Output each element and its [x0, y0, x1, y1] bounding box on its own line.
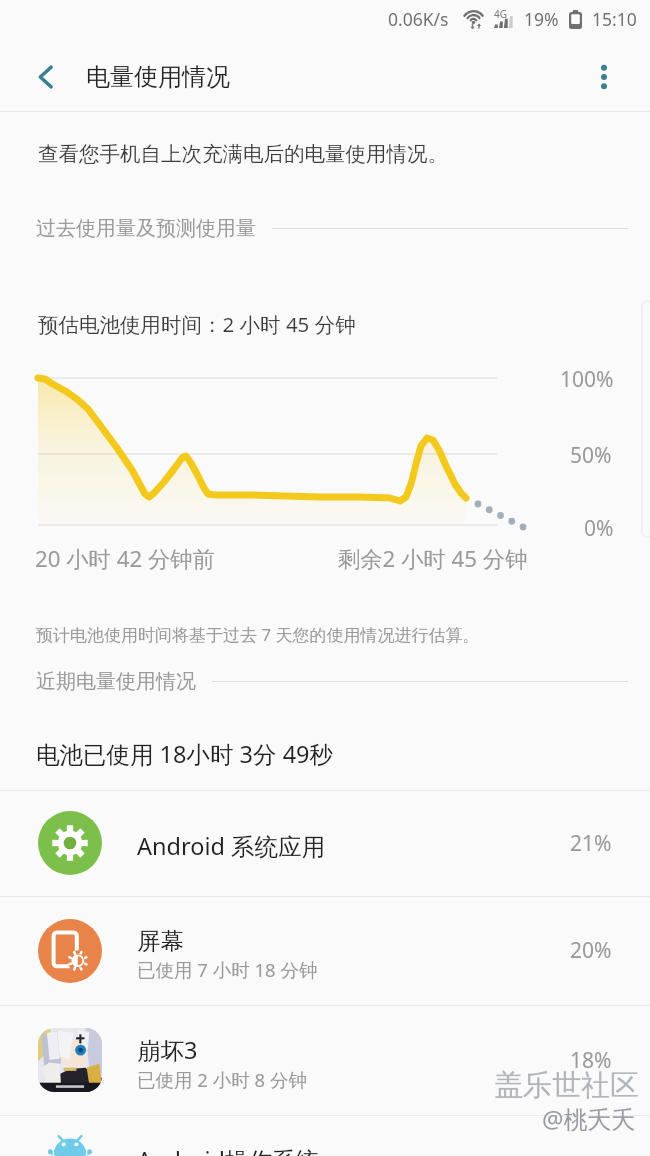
- staticText: 18%: [570, 1046, 612, 1075]
- staticText: 崩坏3: [137, 1034, 198, 1066]
- staticText: 屏幕: [137, 926, 184, 956]
- button[interactable]: 崩坏3: [0, 1005, 650, 1115]
- staticText: 已使用 7 小时 18 分钟: [137, 957, 318, 982]
- staticText: 查看您手机自上次充满电后的电量使用情况。: [38, 141, 448, 167]
- staticText: 盖乐世社区: [494, 1067, 639, 1104]
- staticText: Android操作系统: [137, 1144, 319, 1156]
- staticText: 电池已使用 18小时 3分 49秒: [36, 738, 334, 770]
- staticText: 19%: [524, 7, 559, 31]
- staticText: 预估电池使用时间：2 小时 45 分钟: [38, 310, 356, 338]
- staticText: 100%: [560, 365, 614, 394]
- staticText: 0.06K/s: [388, 7, 449, 31]
- staticText: @桃夭夭: [542, 1102, 636, 1135]
- button[interactable]: Android 系统应用: [0, 790, 650, 896]
- staticText: 20 小时 42 分钟前: [35, 543, 215, 573]
- staticText: 21%: [570, 829, 612, 858]
- button[interactable]: More options: [572, 42, 636, 111]
- staticText: 50%: [570, 441, 612, 470]
- button[interactable]: Back: [14, 42, 78, 111]
- staticText: 电量使用情况: [86, 62, 230, 92]
- staticText: Android 系统应用: [137, 830, 326, 862]
- staticText: 15:10: [592, 7, 637, 31]
- button[interactable]: Android操作系统: [0, 1115, 650, 1156]
- staticText: 0%: [584, 514, 614, 543]
- staticText: 4G: [494, 7, 507, 21]
- staticText: 已使用 2 小时 8 分钟: [137, 1067, 307, 1092]
- staticText: 过去使用量及预测使用量: [36, 216, 256, 241]
- staticText: 预计电池使用时间将基于过去 7 天您的使用情况进行估算。: [36, 623, 480, 646]
- staticText: 剩余2 小时 45 分钟: [338, 543, 528, 573]
- button[interactable]: 屏幕: [0, 896, 650, 1005]
- staticText: 近期电量使用情况: [36, 669, 196, 694]
- staticText: 20%: [570, 936, 612, 965]
